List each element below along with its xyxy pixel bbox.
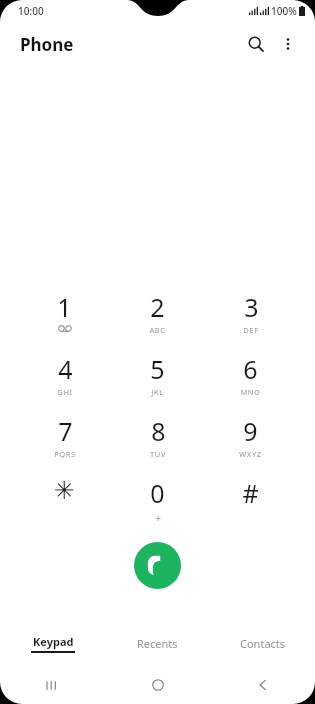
button[interactable]: Back <box>210 666 315 704</box>
button[interactable]: 8 <box>111 414 204 476</box>
staticText: 10:00 <box>18 4 44 18</box>
button[interactable]: Search <box>239 27 273 61</box>
button[interactable]: 7 <box>18 414 111 476</box>
staticText: # <box>242 476 259 510</box>
button[interactable]: 3 <box>204 290 297 352</box>
staticText: 8 <box>151 414 166 448</box>
staticText: 7 <box>58 414 73 448</box>
button[interactable]: # <box>204 476 297 538</box>
staticText: Recents <box>137 636 178 651</box>
button[interactable]: Recents <box>105 626 210 660</box>
staticText: 6 <box>243 352 258 386</box>
button[interactable]: Recent apps <box>0 666 105 704</box>
button[interactable]: Home <box>105 666 210 704</box>
staticText: 100% <box>271 4 297 18</box>
staticText: ABC <box>149 325 166 335</box>
button[interactable]: Call <box>134 542 181 589</box>
button[interactable]: Keypad <box>0 626 105 660</box>
staticText: 4 <box>58 352 73 386</box>
button[interactable]: More options <box>273 29 303 59</box>
button[interactable]: 6 <box>204 352 297 414</box>
button[interactable]: 1 <box>18 290 111 352</box>
staticText: 2 <box>150 290 165 324</box>
staticText: Contacts <box>240 636 286 651</box>
staticText: DEF <box>243 325 259 335</box>
button[interactable]: 5 <box>111 352 204 414</box>
staticText: MNO <box>240 387 261 397</box>
staticText: 9 <box>243 414 258 448</box>
button[interactable]: ✳ <box>18 476 111 538</box>
button[interactable]: 2 <box>111 290 204 352</box>
staticText: WXYZ <box>239 449 262 459</box>
staticText: Keypad <box>33 634 74 649</box>
staticText: + <box>155 511 161 525</box>
staticText: 5 <box>150 352 165 386</box>
staticText: 3 <box>244 290 259 324</box>
staticText: JKL <box>151 387 164 397</box>
staticText: PQRS <box>54 449 76 459</box>
button[interactable]: Contacts <box>210 626 315 660</box>
staticText: 0 <box>150 476 165 510</box>
staticText: Phone <box>20 33 74 56</box>
staticText: ✳ <box>54 476 75 505</box>
staticText: 1 <box>57 290 72 324</box>
button[interactable]: 4 <box>18 352 111 414</box>
button[interactable]: 0 <box>111 476 204 538</box>
staticText: TUV <box>150 449 166 459</box>
staticText: GHI <box>57 387 73 397</box>
button[interactable]: 9 <box>204 414 297 476</box>
